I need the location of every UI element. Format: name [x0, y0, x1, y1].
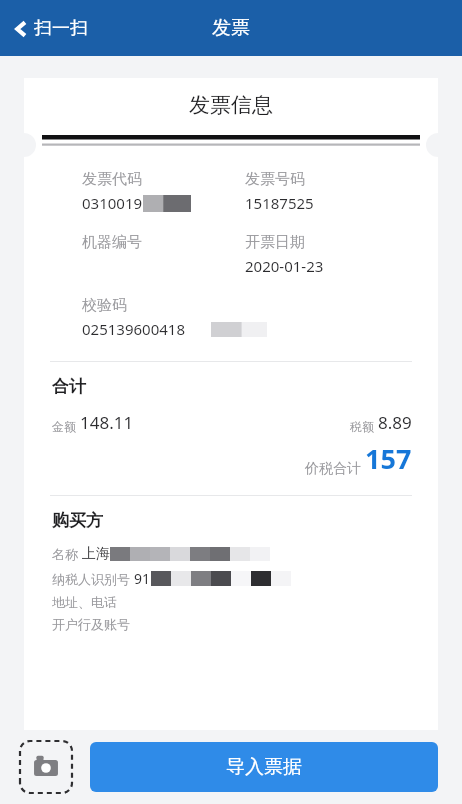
button[interactable]: Camera: [20, 741, 72, 793]
staticText: 发票信息: [189, 92, 273, 118]
staticText: 金额: [52, 418, 80, 434]
staticText: 开户行及账号: [52, 616, 130, 632]
button[interactable]: 导入票据: [90, 742, 438, 792]
staticText: 扫一扫: [34, 17, 88, 40]
staticText: 名称: [52, 545, 82, 563]
staticText: 发票号码: [245, 170, 305, 189]
staticText: 8.89: [378, 411, 412, 434]
staticText: 157: [365, 440, 412, 477]
staticText: 2020-01-23: [245, 256, 324, 276]
staticText: 发票代码: [82, 170, 142, 189]
staticText: 校验码: [82, 296, 127, 315]
staticText: 0310019: [82, 193, 143, 213]
staticText: 机器编号: [82, 233, 142, 252]
staticText: 购买方: [52, 510, 103, 531]
staticText: 开票日期: [245, 233, 305, 252]
staticText: 15187525: [245, 193, 314, 213]
button[interactable]: 扫一扫: [0, 9, 100, 48]
staticText: 上海: [82, 545, 110, 563]
staticText: 税额: [350, 418, 378, 434]
staticText: 导入票据: [226, 755, 302, 779]
staticText: 纳税人识别号: [52, 570, 134, 588]
staticText: 地址、电话: [52, 594, 117, 610]
staticText: 价税合计: [305, 458, 365, 477]
staticText: 发票: [212, 16, 250, 40]
staticText: 91: [134, 569, 151, 588]
staticText: 148.11: [80, 411, 134, 434]
staticText: 合计: [52, 376, 86, 397]
staticText: 025139600418: [82, 319, 185, 339]
